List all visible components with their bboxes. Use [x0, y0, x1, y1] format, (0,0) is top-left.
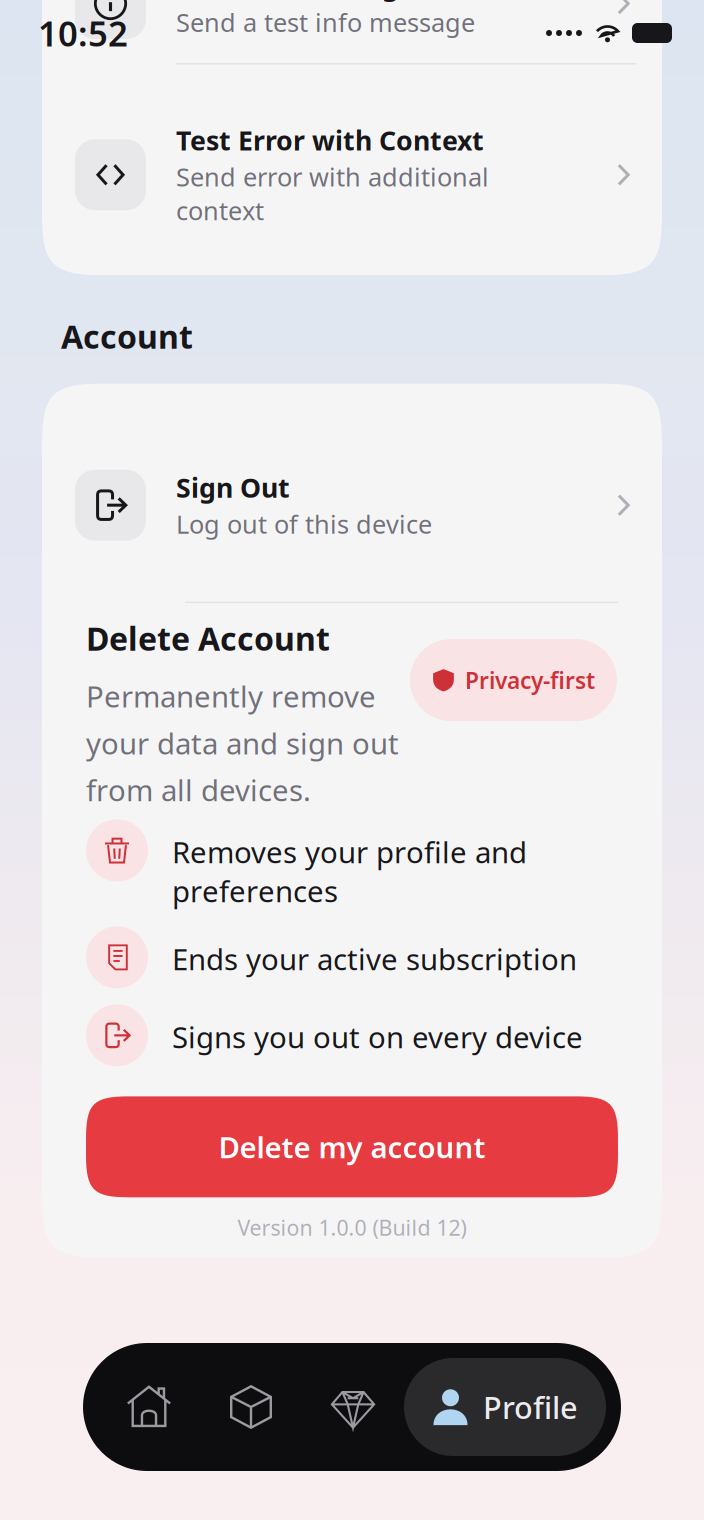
button[interactable]: Test Info Message — [42, 0, 662, 63]
staticText: Delete Account — [86, 617, 330, 660]
staticText: Sign Out — [176, 470, 290, 505]
staticText: Test Info Message — [176, 0, 415, 3]
button[interactable]: Library — [200, 1358, 302, 1456]
button[interactable]: Home — [98, 1358, 200, 1456]
staticText: Signs you out on every device — [172, 1017, 583, 1056]
staticText: Profile — [483, 1387, 578, 1427]
staticText: 10:52 — [38, 10, 128, 56]
staticText: Privacy-first — [465, 665, 595, 695]
staticText: Log out of this device — [176, 507, 432, 541]
staticText: Delete my account — [218, 1127, 485, 1166]
button[interactable]: Test Error with Context — [42, 64, 662, 275]
button[interactable]: Profile — [404, 1358, 606, 1456]
button[interactable]: Premium — [302, 1358, 404, 1456]
staticText: Send a test info message — [176, 5, 475, 39]
staticText: Removes your profile and preferences — [172, 832, 527, 910]
staticText: Account — [61, 315, 193, 358]
staticText: Test Error with Context — [176, 122, 484, 158]
button[interactable]: Sign Out — [42, 384, 662, 602]
staticText: Send error with additional context — [176, 160, 489, 227]
staticText: Ends your active subscription — [172, 939, 577, 978]
staticText: Version 1.0.0 (Build 12) — [237, 1213, 466, 1242]
staticText: Permanently remove your data and sign ou… — [86, 677, 399, 809]
button[interactable]: Delete my account — [86, 1096, 618, 1197]
